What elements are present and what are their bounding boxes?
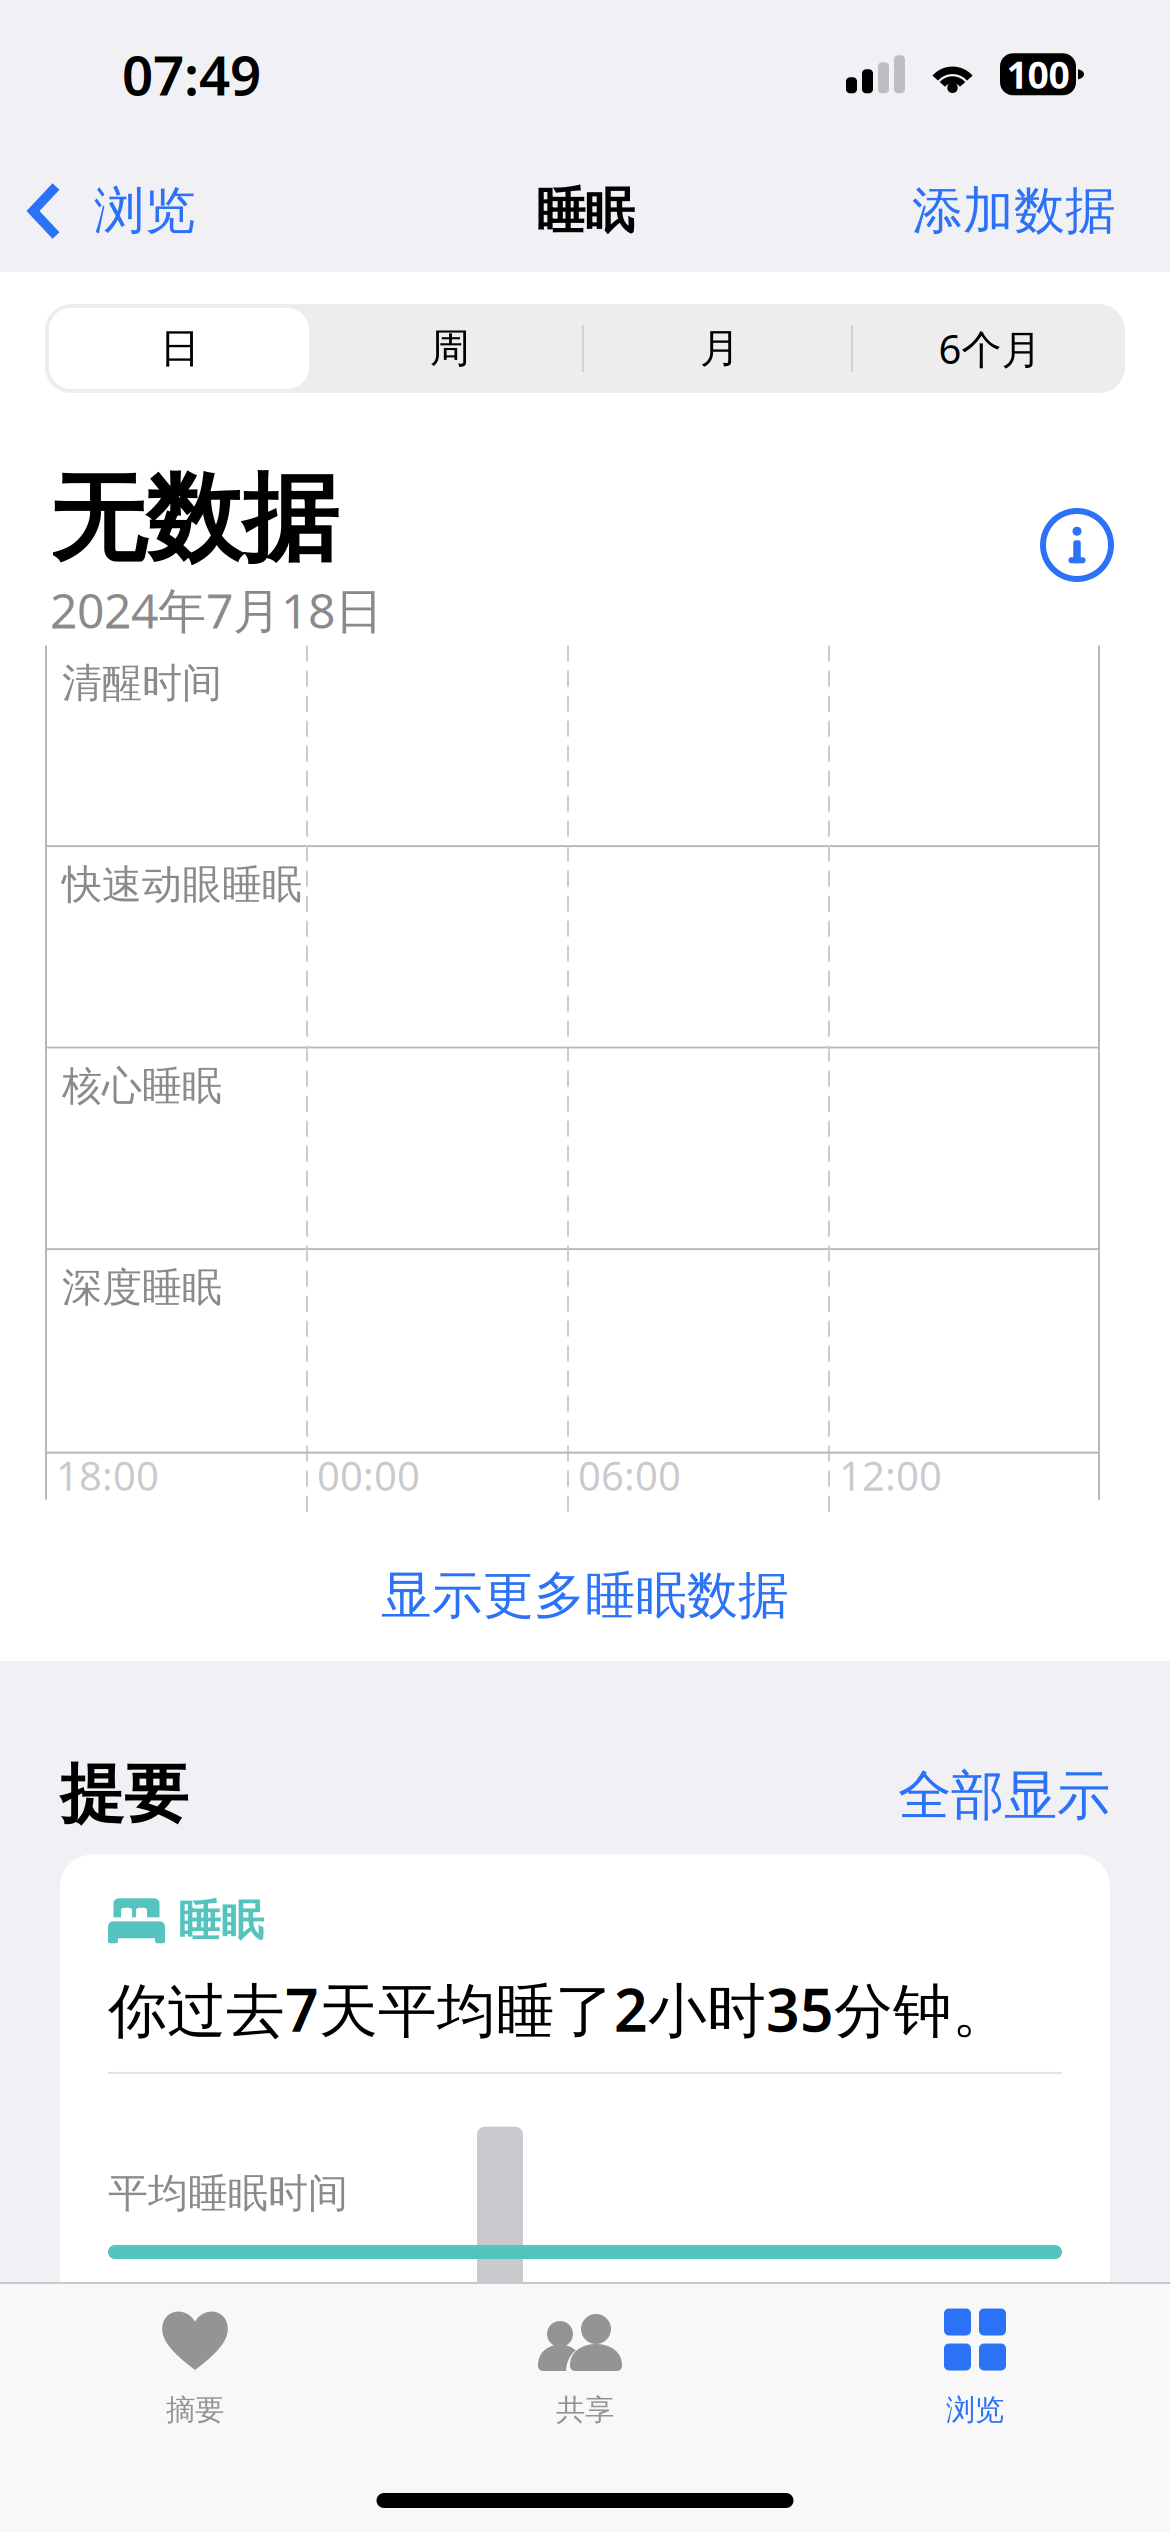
staticText: 摘要 — [166, 2392, 224, 2428]
staticText: 浏览 — [94, 180, 196, 242]
staticText: 2024年7月18日 — [50, 578, 383, 642]
button[interactable]: 显示更多睡眠数据 — [0, 1566, 1170, 1626]
staticText: 100 — [1006, 49, 1069, 99]
staticText: 浏览 — [946, 2392, 1004, 2428]
button[interactable]: 共享 — [390, 2308, 780, 2432]
staticText: 快速动眼睡眠 — [62, 860, 302, 909]
button[interactable]: 日 — [45, 304, 315, 393]
button[interactable]: 全部显示 — [898, 1763, 1110, 1834]
staticText: 无数据 — [50, 460, 338, 578]
staticText: 18:00 — [56, 1449, 159, 1502]
staticText: 显示更多睡眠数据 — [381, 1564, 789, 1627]
staticText: 07:49 — [122, 38, 261, 111]
staticText: 睡眠 — [536, 181, 634, 241]
staticText: 全部显示 — [898, 1763, 1110, 1829]
staticText: 06:00 — [578, 1449, 681, 1502]
staticText: 清醒时间 — [62, 659, 222, 708]
button[interactable]: 摘要 — [0, 2308, 390, 2432]
staticText: 你过去7天平均睡了2小时35分钟。 — [108, 1970, 1011, 2048]
staticText: 核心睡眠 — [62, 1062, 222, 1111]
staticText: 12:00 — [839, 1449, 942, 1502]
button[interactable]: 月 — [585, 304, 855, 393]
button[interactable]: 6个月 — [855, 304, 1125, 393]
button[interactable]: 周 — [315, 304, 585, 393]
staticText: 周 — [430, 324, 470, 373]
staticText: 添加数据 — [912, 180, 1116, 242]
staticText: 睡眠 — [178, 1895, 264, 1947]
staticText: 月 — [700, 324, 740, 373]
staticText: 共享 — [556, 2392, 614, 2428]
staticText: 平均睡眠时间 — [108, 2169, 348, 2218]
staticText: 提要 — [60, 1755, 188, 1834]
staticText: 00:00 — [317, 1449, 420, 1502]
staticText: 深度睡眠 — [62, 1263, 222, 1312]
button[interactable]: 添加数据 — [885, 150, 1143, 272]
staticText: 6个月 — [938, 322, 1041, 375]
button[interactable]: 关于睡眠 — [1040, 460, 1120, 582]
button[interactable]: 浏览 — [780, 2308, 1170, 2432]
staticText: 日 — [160, 324, 200, 373]
button[interactable]: 浏览 — [0, 150, 210, 272]
